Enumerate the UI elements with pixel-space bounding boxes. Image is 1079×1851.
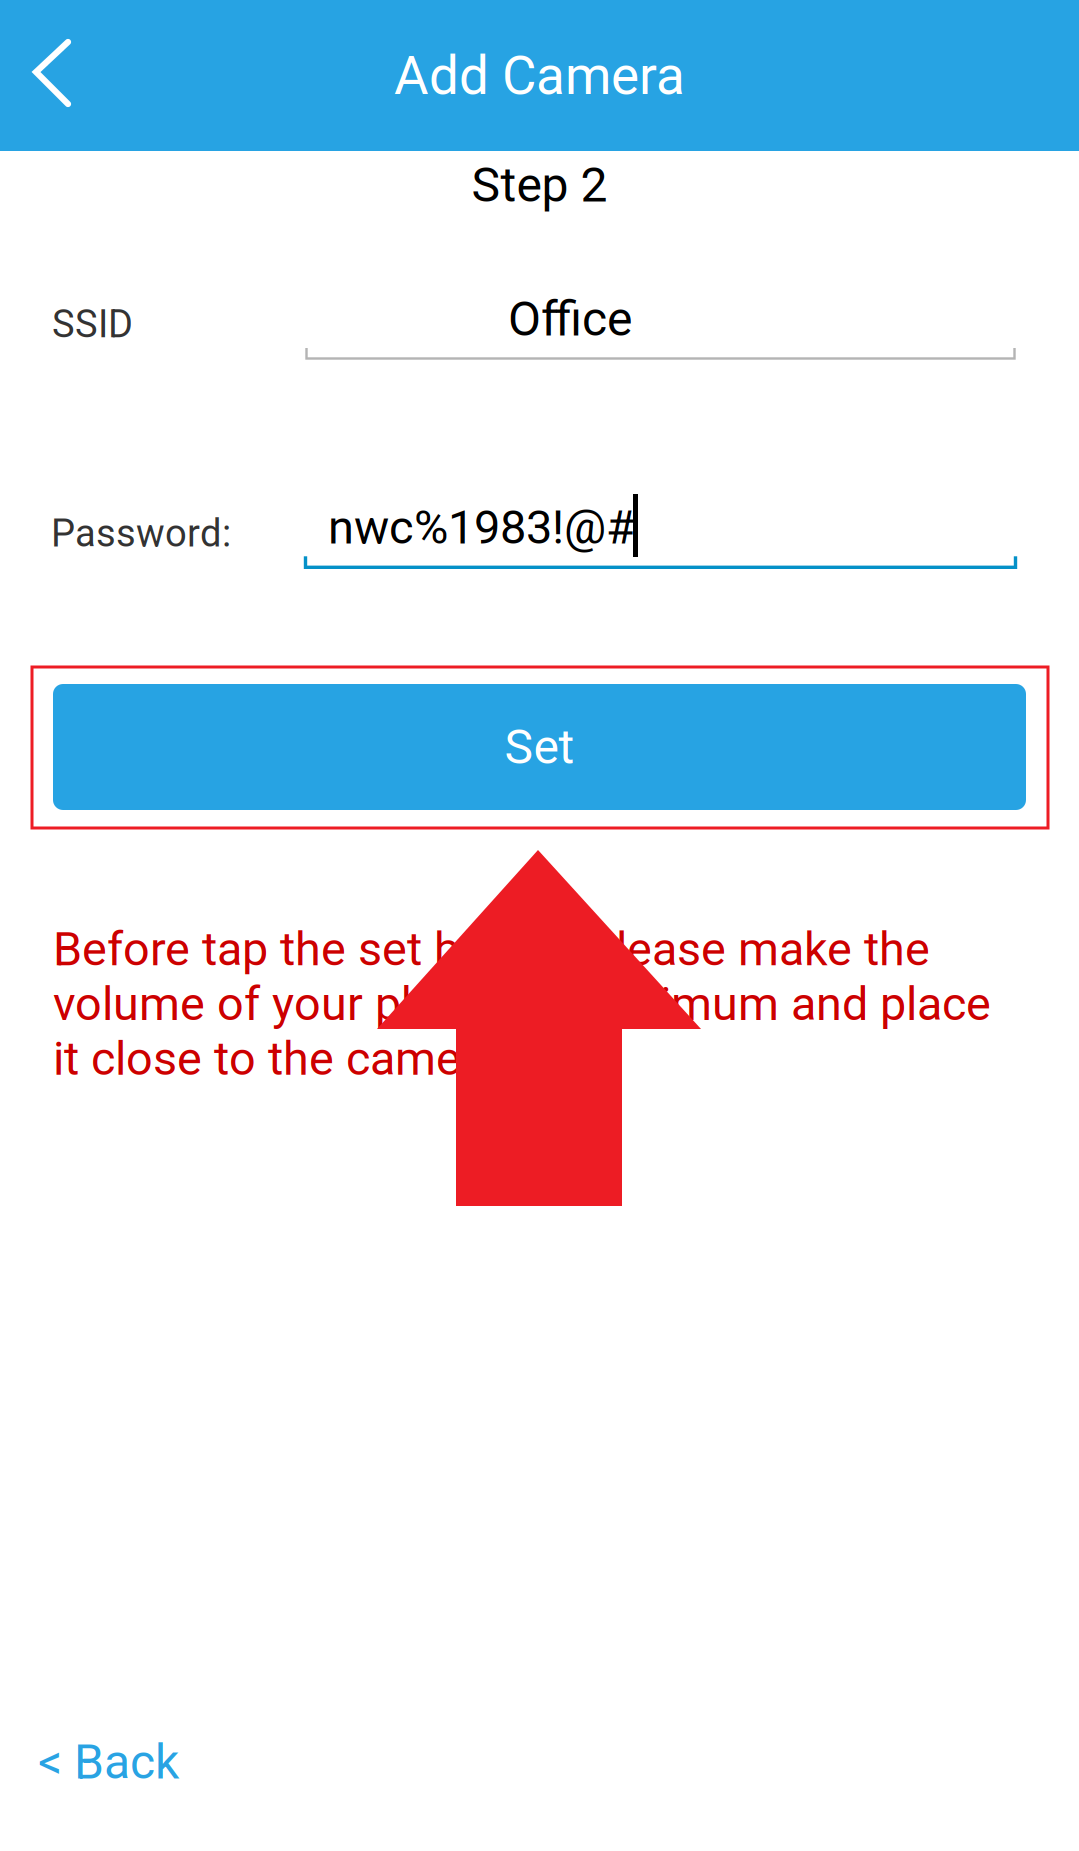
staticText: SSID xyxy=(52,302,133,346)
button[interactable]: < Back xyxy=(24,1716,193,1808)
staticText: Add Camera xyxy=(394,45,685,107)
staticText: Password: xyxy=(51,511,231,556)
button[interactable]: Back xyxy=(0,0,110,151)
staticText: nwc%1983!@# xyxy=(328,500,635,555)
staticText: Step 2 xyxy=(471,157,607,213)
staticText: Office xyxy=(508,291,632,347)
button[interactable]: SSID, Office xyxy=(305,273,1016,367)
button[interactable]: Password xyxy=(305,482,1016,576)
staticText: Set xyxy=(504,719,574,775)
button[interactable]: Set xyxy=(53,684,1026,810)
staticText: Before tap the set button, please make t… xyxy=(53,922,991,1086)
staticText: < Back xyxy=(38,1734,179,1790)
